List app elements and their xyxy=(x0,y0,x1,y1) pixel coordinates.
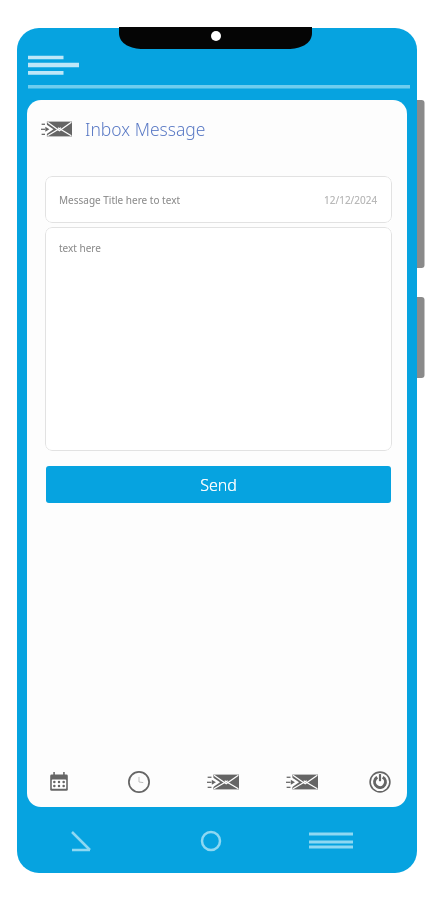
button[interactable]: text here xyxy=(45,227,392,451)
button[interactable]: Inbox xyxy=(205,764,241,800)
button[interactable]: Power xyxy=(362,764,398,800)
staticText: Message Title here to text xyxy=(59,193,181,207)
staticText: 12/12/2024 xyxy=(324,193,378,207)
button[interactable]: Back xyxy=(66,826,96,856)
button[interactable]: Calendar xyxy=(41,764,77,800)
button[interactable]: Messages xyxy=(284,764,320,800)
button[interactable]: Inbox Message xyxy=(41,115,206,143)
button[interactable]: Send xyxy=(46,466,391,503)
staticText: text here xyxy=(59,241,101,255)
staticText: Send xyxy=(200,474,237,496)
button[interactable]: Home xyxy=(196,826,226,856)
button[interactable]: Clock xyxy=(121,764,157,800)
button[interactable]: Recents xyxy=(306,826,356,856)
staticText: Inbox Message xyxy=(85,117,206,141)
button[interactable]: Message Title here to text xyxy=(45,176,392,223)
